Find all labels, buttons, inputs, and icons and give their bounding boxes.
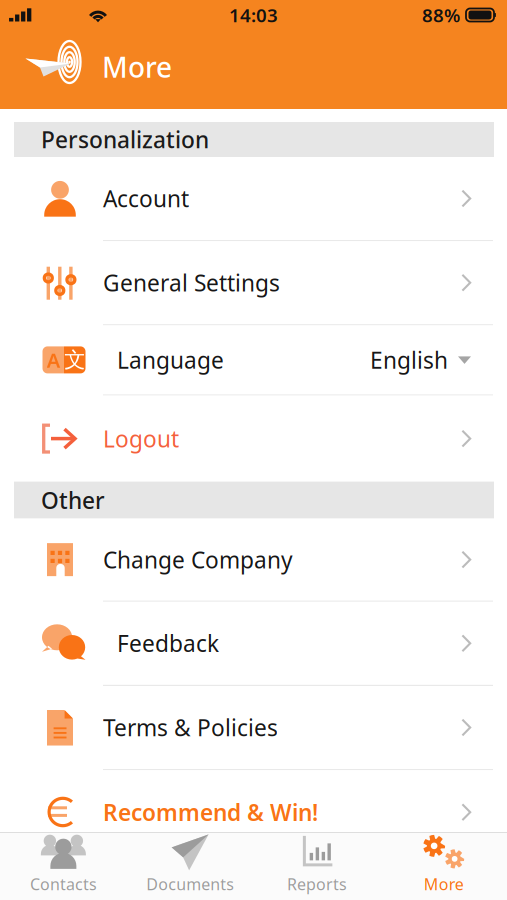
button[interactable]: Reports bbox=[253, 833, 380, 900]
button[interactable]: Account bbox=[0, 157, 507, 240]
staticText: Feedback bbox=[117, 628, 219, 658]
staticText: Logout bbox=[103, 423, 179, 454]
button[interactable]: More bbox=[380, 833, 507, 900]
staticText: Language bbox=[117, 345, 224, 375]
staticText: More bbox=[424, 873, 464, 895]
button[interactable]: Change Company bbox=[0, 519, 507, 601]
button[interactable]: General Settings bbox=[0, 241, 507, 324]
staticText: Terms & Policies bbox=[103, 712, 278, 742]
staticText: Other bbox=[41, 485, 105, 515]
button[interactable]: Logout bbox=[0, 396, 507, 482]
staticText: 文 bbox=[64, 347, 85, 373]
staticText: Personalization bbox=[41, 124, 209, 154]
button[interactable]: Feedback bbox=[0, 602, 507, 685]
staticText: A bbox=[47, 347, 60, 373]
staticText: General Settings bbox=[103, 268, 280, 298]
button[interactable]: Contacts bbox=[0, 833, 127, 900]
button[interactable]: Terms & Policies bbox=[0, 686, 507, 769]
staticText: Account bbox=[103, 183, 189, 213]
button[interactable]: A bbox=[0, 325, 507, 394]
staticText: 88% bbox=[422, 3, 460, 27]
staticText: Reports bbox=[287, 873, 347, 895]
staticText: Recommend & Win! bbox=[103, 797, 318, 827]
staticText: Documents bbox=[146, 873, 234, 895]
staticText: English bbox=[370, 345, 448, 375]
staticText: Change Company bbox=[103, 544, 293, 575]
staticText: 14:03 bbox=[229, 3, 278, 27]
staticText: Contacts bbox=[30, 873, 97, 895]
button[interactable]: Recommend & Win! bbox=[0, 770, 507, 854]
button[interactable]: Documents bbox=[127, 833, 254, 900]
staticText: More bbox=[102, 48, 172, 86]
